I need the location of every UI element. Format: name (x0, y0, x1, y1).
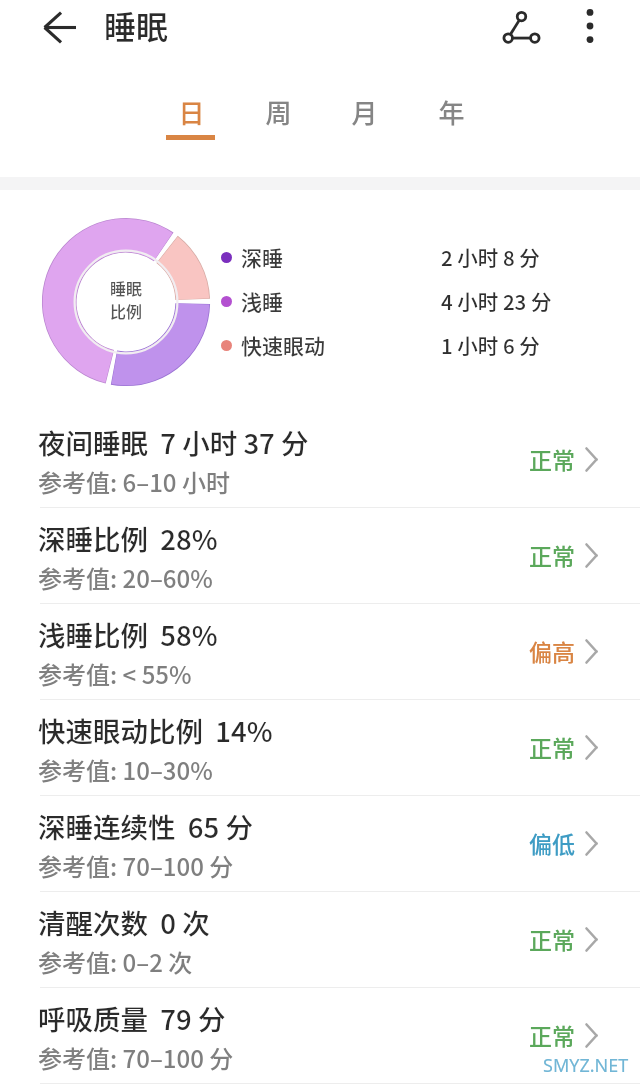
button[interactable]: 周 (242, 83, 314, 141)
staticText: 睡眠 (104, 2, 169, 48)
staticText: 参考值: 0–2 次 (38, 944, 193, 979)
staticText: 浅睡比例 58% (38, 614, 218, 654)
staticText: 睡眠 (110, 276, 143, 299)
staticText: 深睡 (241, 242, 283, 272)
staticText: 1 小时 6 分 (441, 330, 540, 360)
staticText: 深睡比例 28% (38, 518, 218, 558)
button[interactable]: Share (493, 0, 549, 56)
button[interactable]: 快速眼动比例 14% (0, 700, 640, 796)
button[interactable]: 月 (328, 83, 400, 141)
staticText: 正常 (529, 730, 575, 763)
staticText: 比例 (110, 299, 143, 322)
staticText: 快速眼动比例 14% (38, 710, 273, 750)
staticText: 年 (438, 93, 465, 131)
staticText: 正常 (529, 442, 575, 475)
button[interactable]: 日 (155, 83, 227, 141)
staticText: 参考值: 70–100 分 (38, 848, 234, 883)
button[interactable]: 深睡比例 28% (0, 508, 640, 604)
staticText: 正常 (529, 922, 575, 955)
staticText: 参考值: 10–30% (38, 752, 213, 787)
staticText: 月 (351, 93, 378, 131)
button[interactable]: 浅睡比例 58% (0, 604, 640, 700)
button[interactable]: 浅睡 (221, 285, 621, 317)
button[interactable]: More options (564, 0, 616, 52)
button[interactable]: 年 (415, 83, 487, 141)
button[interactable]: 清醒次数 0 次 (0, 892, 640, 988)
staticText: 偏低 (529, 826, 575, 859)
staticText: 参考值: < 55% (38, 656, 192, 691)
staticText: 快速眼动 (241, 330, 325, 360)
staticText: 日 (178, 93, 205, 131)
staticText: 浅睡 (241, 286, 283, 316)
staticText: 深睡连续性 65 分 (38, 806, 253, 846)
staticText: 2 小时 8 分 (441, 242, 540, 272)
staticText: 正常 (529, 538, 575, 571)
button[interactable]: 深睡 (221, 241, 621, 273)
staticText: 参考值: 6–10 小时 (38, 464, 230, 499)
staticText: 4 小时 23 分 (441, 286, 552, 316)
staticText: 周 (265, 93, 292, 131)
button[interactable]: 深睡连续性 65 分 (0, 796, 640, 892)
staticText: 偏高 (529, 634, 575, 667)
staticText: SMYZ.NET (543, 1053, 629, 1078)
button[interactable]: 夜间睡眠 7 小时 37 分 (0, 412, 640, 508)
staticText: 清醒次数 0 次 (38, 902, 210, 942)
staticText: 呼吸质量 79 分 (38, 998, 226, 1038)
staticText: 参考值: 20–60% (38, 560, 213, 595)
button[interactable]: Back (30, 0, 90, 57)
staticText: 夜间睡眠 7 小时 37 分 (38, 422, 309, 462)
button[interactable]: 呼吸质量 79 分 (0, 988, 640, 1084)
button[interactable]: 快速眼动 (221, 329, 621, 361)
staticText: 正常 (529, 1018, 575, 1051)
staticText: 参考值: 70–100 分 (38, 1040, 234, 1075)
